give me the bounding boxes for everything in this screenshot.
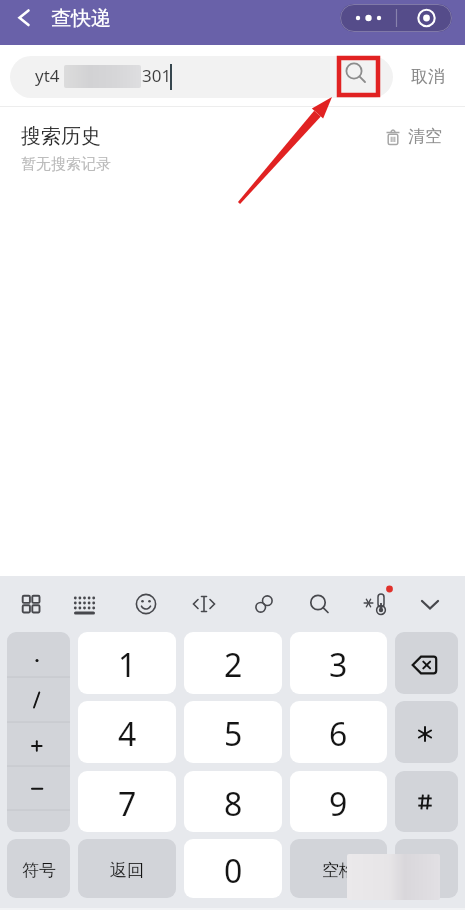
staticText: 6 (329, 712, 348, 756)
button[interactable]: 3 (290, 632, 387, 694)
staticText: 清空 (408, 126, 442, 147)
staticText: 4 (118, 712, 137, 756)
button[interactable] (395, 839, 458, 898)
staticText: 5 (224, 712, 243, 756)
button[interactable]: 1 (78, 632, 176, 694)
button[interactable]: 0 (184, 839, 282, 898)
staticText: 0 (224, 849, 243, 893)
button[interactable]: 5 (184, 701, 282, 763)
staticText: 符号 (22, 860, 56, 881)
staticText: 8 (224, 782, 243, 826)
staticText: 9 (329, 782, 348, 826)
staticText: 2 (224, 643, 243, 687)
staticText: 取消 (411, 66, 445, 87)
button[interactable] (10, 56, 393, 98)
button[interactable] (395, 701, 458, 763)
staticText: 1 (118, 643, 137, 687)
staticText: 3 (329, 643, 348, 687)
staticText: 返回 (110, 860, 144, 881)
button[interactable]: 符号 (7, 839, 70, 898)
staticText: 搜索历史 (21, 124, 101, 149)
button[interactable]: 取消 (402, 58, 454, 94)
staticText: 空格 (322, 860, 356, 881)
button[interactable]: 4 (78, 701, 176, 763)
button[interactable]: 返回 (78, 839, 176, 898)
button[interactable]: 6 (290, 701, 387, 763)
button[interactable] (340, 4, 452, 32)
button[interactable] (7, 632, 70, 832)
staticText: 301 (142, 64, 172, 87)
button[interactable]: 8 (184, 771, 282, 832)
button[interactable]: 空格 (290, 839, 387, 898)
staticText: 查快递 (51, 6, 111, 31)
button[interactable]: 清空 (384, 128, 446, 150)
staticText: 7 (118, 782, 137, 826)
button[interactable] (395, 632, 458, 694)
staticText: 暂无搜索记录 (21, 155, 111, 174)
staticText: yt4 (35, 64, 60, 87)
button[interactable]: 7 (78, 771, 176, 832)
button[interactable] (395, 771, 458, 832)
button[interactable]: 9 (290, 771, 387, 832)
button[interactable] (12, 4, 40, 32)
button[interactable]: 2 (184, 632, 282, 694)
